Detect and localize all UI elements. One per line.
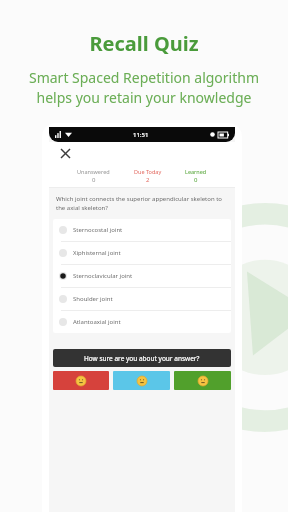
staticText: How sure are you about your answer?: [84, 354, 200, 363]
staticText: Recall Quiz: [0, 30, 288, 57]
staticText: Atlantoaxial joint: [73, 318, 121, 326]
button[interactable]: Close: [55, 143, 75, 163]
staticText: 2: [146, 176, 150, 184]
staticText: Unanswered: [77, 168, 110, 175]
staticText: Sternocostal joint: [73, 226, 123, 234]
staticText: Shoulder joint: [73, 295, 113, 303]
button[interactable]: Sternocostal joint: [53, 219, 231, 241]
staticText: Due Today: [134, 168, 162, 175]
button[interactable]: Not sure: [53, 371, 109, 390]
button[interactable]: Shoulder joint: [53, 288, 231, 310]
staticText: Learned: [185, 168, 207, 175]
staticText: Which joint connects the superior append…: [56, 195, 228, 212]
button[interactable]: Somewhat sure: [113, 371, 170, 390]
staticText: Smart Spaced Repetition algorithm helps …: [8, 68, 280, 107]
button[interactable]: Sternoclavicular joint: [53, 265, 231, 287]
staticText: Xiphisternal joint: [73, 249, 121, 257]
staticText: Sternoclavicular joint: [73, 272, 133, 280]
staticText: 0: [194, 176, 198, 184]
button[interactable]: Atlantoaxial joint: [53, 311, 231, 333]
button[interactable]: Xiphisternal joint: [53, 242, 231, 264]
staticText: 11:51: [133, 131, 149, 139]
button[interactable]: Very sure: [174, 371, 231, 390]
staticText: 0: [92, 176, 96, 184]
